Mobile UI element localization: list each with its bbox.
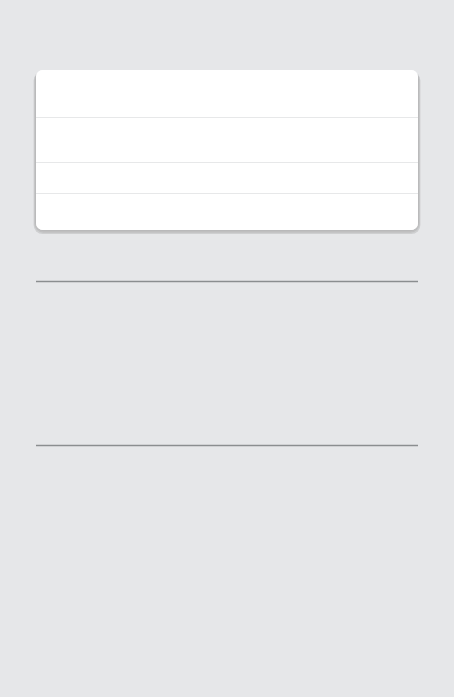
button[interactable]: Row 1 bbox=[36, 70, 418, 118]
button[interactable]: Row 2 bbox=[36, 118, 418, 163]
button[interactable]: Row 3 bbox=[36, 163, 418, 194]
